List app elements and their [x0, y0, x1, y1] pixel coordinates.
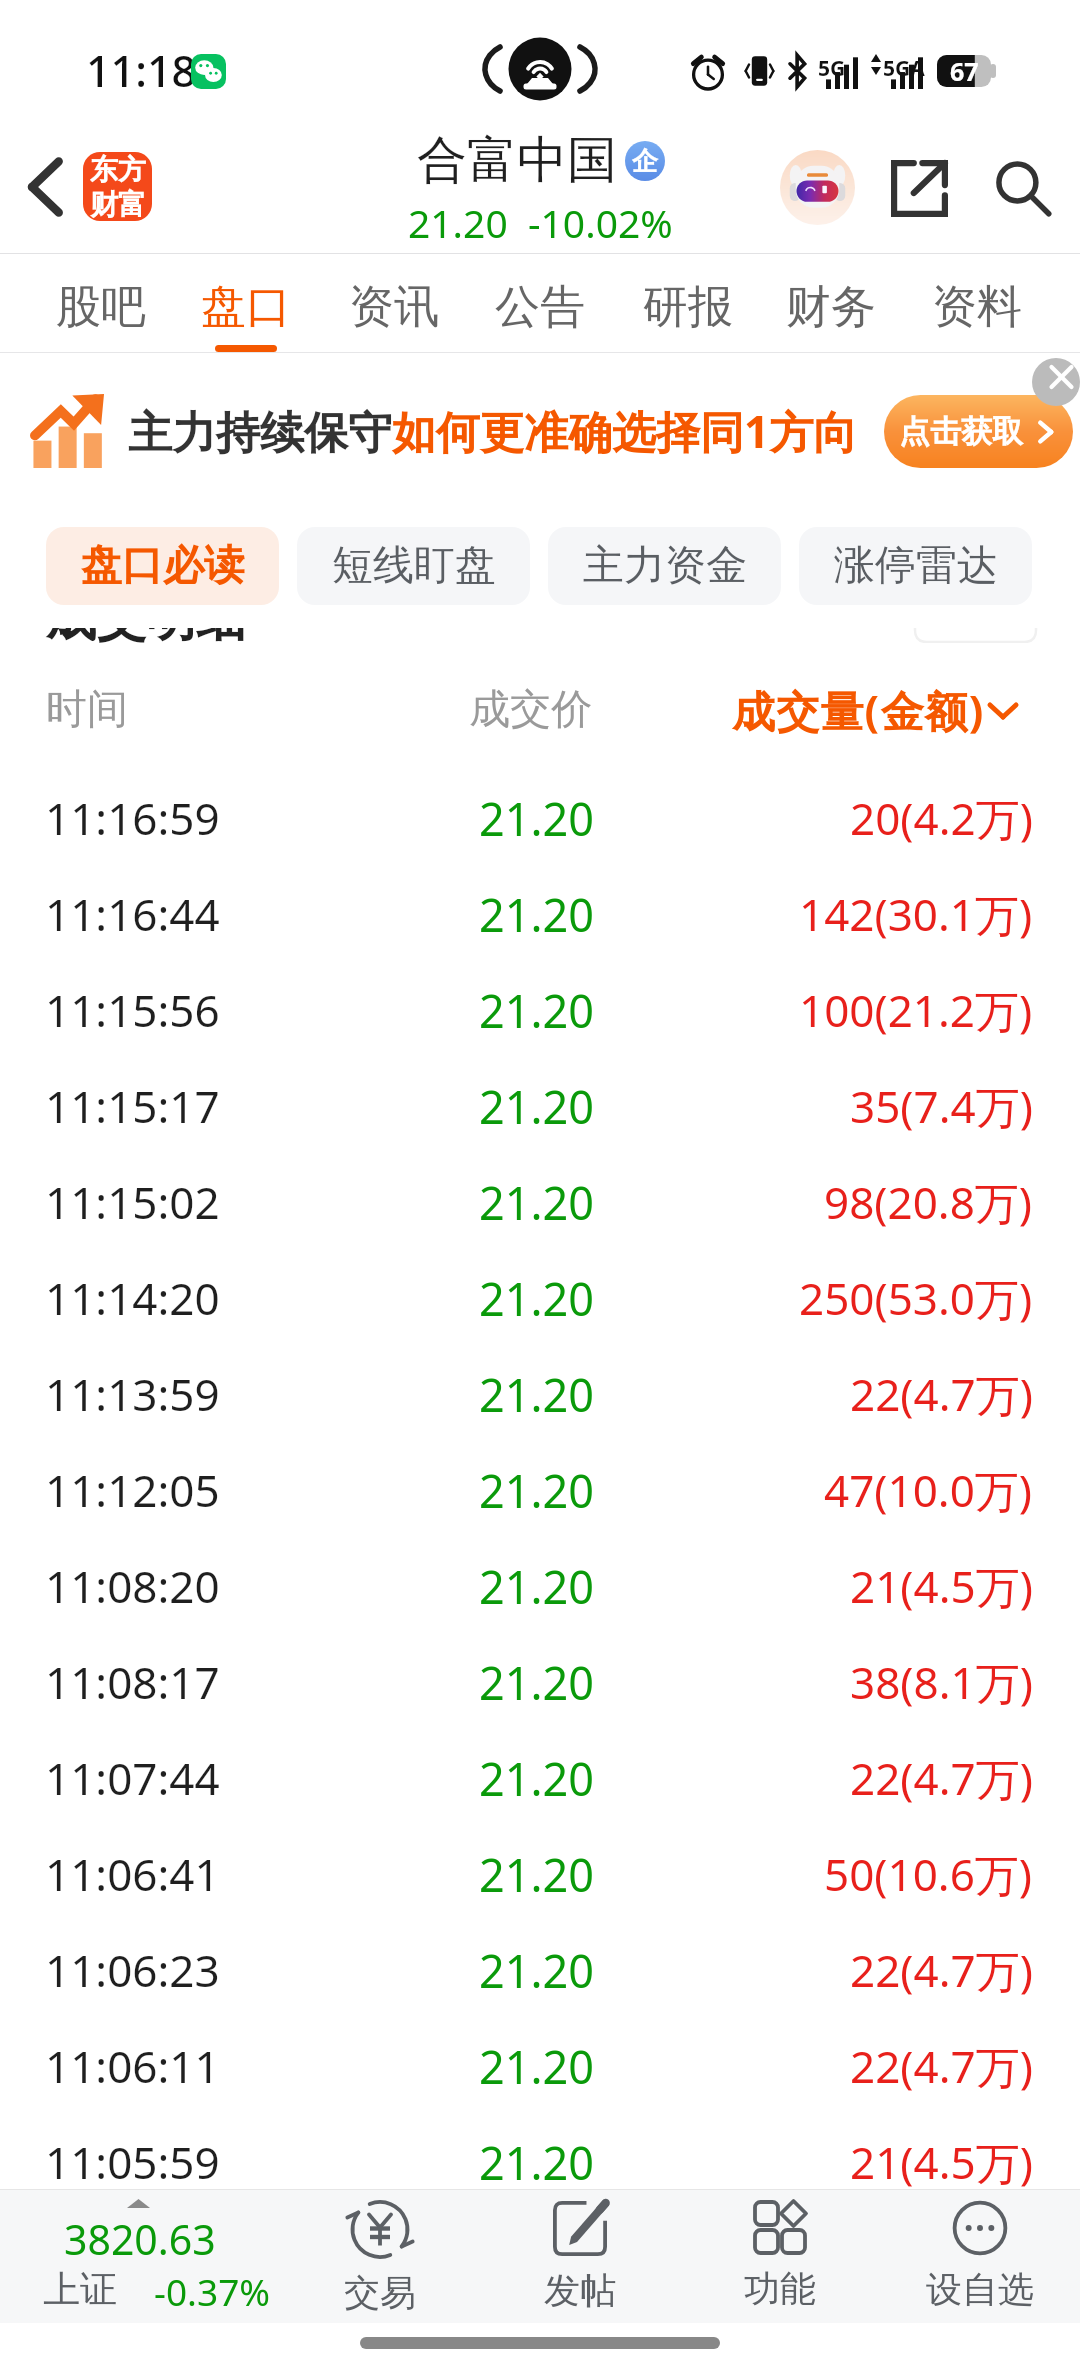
- button[interactable]: 11:16:44: [0, 866, 1080, 962]
- button[interactable]: 3820.63: [0, 2190, 300, 2323]
- button[interactable]: 11:06:11: [0, 2018, 1080, 2114]
- staticText: 11:14:20: [45, 1268, 220, 1328]
- staticText: 5G: [818, 54, 846, 83]
- button[interactable]: 交易: [280, 2190, 480, 2323]
- staticText: 11:16:59: [45, 788, 220, 848]
- button[interactable]: AI assistant: [780, 150, 855, 225]
- button[interactable]: Search: [988, 153, 1058, 223]
- staticText: 资讯: [349, 279, 439, 336]
- staticText: 21.20: [479, 788, 595, 849]
- staticText: 21(4.5万): [850, 1556, 1033, 1616]
- staticText: 21.20: [479, 1556, 595, 1617]
- button[interactable]: 11:13:59: [0, 1346, 1080, 1442]
- button[interactable]: 11:14:20: [0, 1250, 1080, 1346]
- button[interactable]: 资讯: [334, 254, 454, 353]
- staticText: -10.02%: [528, 196, 673, 249]
- button[interactable]: 公告: [480, 254, 600, 353]
- button[interactable]: 11:15:02: [0, 1154, 1080, 1250]
- staticText: 67: [950, 54, 979, 86]
- button[interactable]: 11:15:56: [0, 962, 1080, 1058]
- staticText: 21.20: [479, 1364, 595, 1425]
- staticText: 11:15:56: [45, 980, 220, 1040]
- button[interactable]: 涨停雷达: [799, 527, 1032, 605]
- staticText: 21.20: [479, 1844, 595, 1905]
- staticText: 主力持续保守如何更准确选择同1方向: [128, 401, 858, 461]
- button[interactable]: 研报: [628, 254, 748, 353]
- staticText: 成交价: [469, 684, 592, 736]
- staticText: 11:16:44: [45, 884, 220, 944]
- staticText: 盘口必读: [81, 540, 245, 592]
- button[interactable]: 财务: [771, 254, 891, 353]
- staticText: 21.20: [479, 1076, 595, 1137]
- staticText: 交易: [344, 2270, 416, 2315]
- staticText: 11:08:17: [45, 1652, 220, 1712]
- button[interactable]: 盘口必读: [46, 527, 279, 605]
- button[interactable]: 成交量(金额): [732, 681, 1017, 740]
- button[interactable]: 设自选: [880, 2190, 1080, 2323]
- button[interactable]: 11:06:23: [0, 1922, 1080, 2018]
- button[interactable]: 主力资金: [548, 527, 781, 605]
- button[interactable]: 11:08:17: [0, 1634, 1080, 1730]
- staticText: 11:05:59: [45, 2132, 220, 2192]
- button[interactable]: 11:08:20: [0, 1538, 1080, 1634]
- staticText: 合富中国: [417, 129, 617, 192]
- staticText: 11:12:05: [45, 1460, 220, 1520]
- staticText: 21.20: [479, 2036, 595, 2097]
- staticText: 成交量(金额): [732, 681, 985, 740]
- staticText: 11:06:23: [45, 1940, 220, 2000]
- button[interactable]: 11:05:59: [0, 2114, 1080, 2210]
- staticText: 250(53.0万): [799, 1268, 1033, 1328]
- staticText: 公告: [495, 279, 585, 336]
- staticText: 21.20: [479, 1940, 595, 2001]
- staticText: 5GA: [883, 54, 925, 83]
- staticText: 主力资金: [583, 540, 747, 592]
- button[interactable]: 盘口: [186, 254, 306, 353]
- staticText: 98(20.8万): [824, 1172, 1033, 1232]
- button[interactable]: 11:07:44: [0, 1730, 1080, 1826]
- staticText: 35(7.4万): [850, 1076, 1033, 1136]
- staticText: 设自选: [926, 2267, 1034, 2312]
- staticText: 21.20: [479, 980, 595, 1041]
- staticText: 时间: [46, 684, 128, 736]
- staticText: -0.37%: [154, 2266, 271, 2316]
- button[interactable]: 短线盯盘: [297, 527, 530, 605]
- button[interactable]: Back: [0, 120, 90, 254]
- staticText: 21.20: [479, 1268, 595, 1329]
- staticText: 资料: [932, 279, 1022, 336]
- staticText: 3820.63: [64, 2211, 216, 2267]
- staticText: 38(8.1万): [850, 1652, 1033, 1712]
- staticText: 11:15:17: [45, 1076, 220, 1136]
- staticText: 上证: [43, 2266, 117, 2313]
- button[interactable]: 股吧: [41, 254, 161, 353]
- button[interactable]: 11:06:41: [0, 1826, 1080, 1922]
- staticText: 财富: [90, 187, 146, 221]
- staticText: 50(10.6万): [824, 1844, 1033, 1904]
- staticText: 21.20: [479, 884, 595, 945]
- button[interactable]: Share: [884, 153, 954, 223]
- button[interactable]: 发帖: [480, 2190, 680, 2323]
- staticText: 涨停雷达: [834, 540, 998, 592]
- staticText: 22(4.7万): [850, 2036, 1033, 2096]
- staticText: 21.20: [479, 1748, 595, 1809]
- staticText: 短线盯盘: [332, 540, 496, 592]
- button[interactable]: East Money home: [83, 152, 152, 221]
- staticText: 企: [632, 145, 658, 178]
- staticText: 20(4.2万): [850, 788, 1033, 848]
- staticText: 142(30.1万): [799, 884, 1033, 944]
- staticText: 22(4.7万): [850, 1364, 1033, 1424]
- button[interactable]: Close ad: [1032, 358, 1080, 406]
- button[interactable]: 资料: [917, 254, 1037, 353]
- button[interactable]: 11:12:05: [0, 1442, 1080, 1538]
- staticText: 研报: [643, 279, 733, 336]
- staticText: 11:06:11: [45, 2036, 220, 2096]
- staticText: 发帖: [544, 2268, 616, 2313]
- button[interactable]: 11:15:17: [0, 1058, 1080, 1154]
- staticText: 11:13:59: [45, 1364, 220, 1424]
- staticText: 股吧: [56, 279, 146, 336]
- button[interactable]: 11:16:59: [0, 770, 1080, 866]
- staticText: 点击获取: [899, 412, 1023, 451]
- button[interactable]: 点击获取: [884, 395, 1073, 468]
- staticText: 功能: [744, 2266, 816, 2311]
- staticText: 100(21.2万): [799, 980, 1033, 1040]
- button[interactable]: 功能: [680, 2190, 880, 2323]
